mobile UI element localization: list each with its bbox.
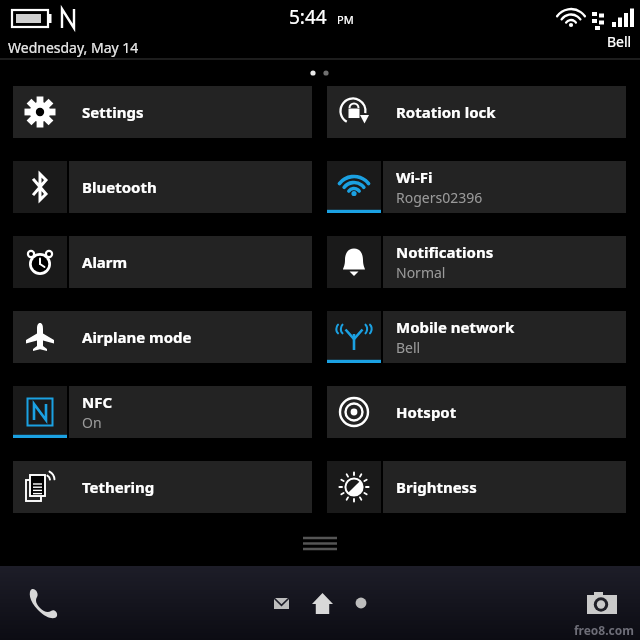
staticText: Bell xyxy=(607,32,632,51)
staticText: On xyxy=(82,413,102,432)
button[interactable]: Bluetooth xyxy=(13,161,312,213)
staticText: Settings xyxy=(82,102,144,122)
button[interactable]: Settings xyxy=(13,86,312,138)
button[interactable]: Recent apps xyxy=(346,588,376,618)
button[interactable]: Home xyxy=(303,584,341,622)
staticText: Normal xyxy=(396,263,446,282)
staticText: Alarm xyxy=(82,252,128,272)
staticText: freo8.com xyxy=(573,622,634,638)
staticText: Wednesday, May 14 xyxy=(8,38,139,57)
button[interactable]: Airplane mode xyxy=(13,311,312,363)
button[interactable]: Phone xyxy=(18,579,66,627)
staticText: Mobile network xyxy=(396,317,515,337)
staticText: Brightness xyxy=(396,477,477,497)
staticText: Tethering xyxy=(82,477,155,497)
button[interactable]: Expand panel xyxy=(300,534,340,554)
staticText: PM xyxy=(337,12,354,27)
staticText: Bluetooth xyxy=(82,177,157,197)
button[interactable]: Alarm xyxy=(13,236,312,288)
staticText: Bell xyxy=(396,338,421,357)
button[interactable]: Notifications xyxy=(327,236,626,288)
button[interactable]: Rotation lock xyxy=(327,86,626,138)
button[interactable]: NFC xyxy=(13,386,312,438)
button[interactable]: Camera xyxy=(578,579,626,627)
button[interactable]: Messages xyxy=(264,586,298,620)
staticText: Wi-Fi xyxy=(396,167,433,187)
staticText: Notifications xyxy=(396,242,494,262)
button[interactable]: Tethering xyxy=(13,461,312,513)
staticText: 5:44 xyxy=(289,4,327,30)
staticText: Rogers02396 xyxy=(396,188,483,207)
button[interactable]: Brightness xyxy=(327,461,626,513)
button[interactable]: Mobile network xyxy=(327,311,626,363)
button[interactable]: Wi-Fi xyxy=(327,161,626,213)
button[interactable]: Hotspot xyxy=(327,386,626,438)
staticText: Rotation lock xyxy=(396,102,496,122)
staticText: Hotspot xyxy=(396,402,457,422)
staticText: NFC xyxy=(82,392,113,412)
staticText: Airplane mode xyxy=(82,327,192,347)
